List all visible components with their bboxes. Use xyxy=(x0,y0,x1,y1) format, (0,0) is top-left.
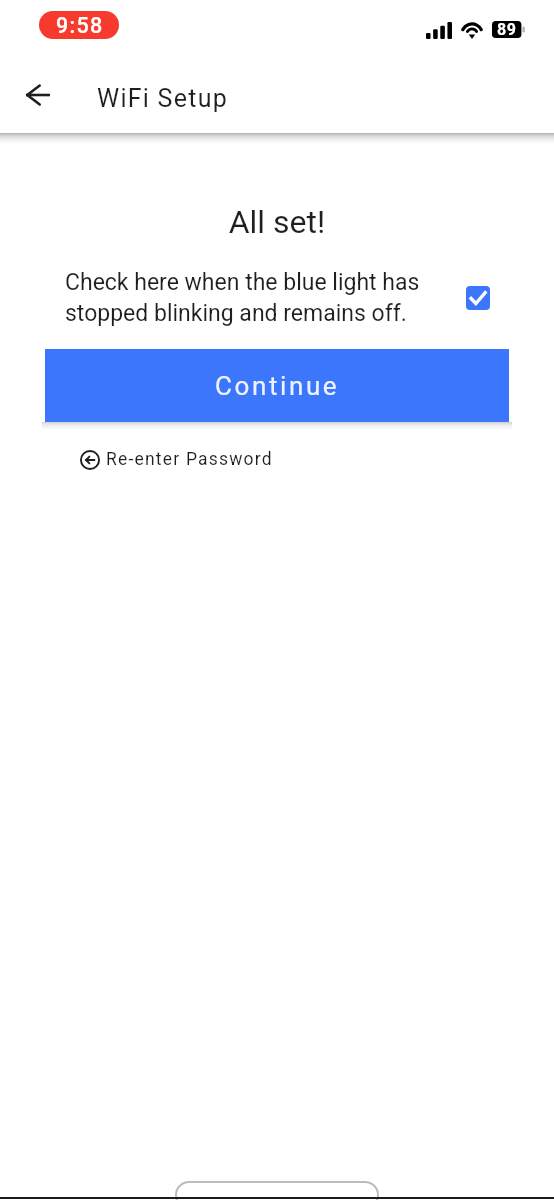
staticText: Continue xyxy=(215,371,340,401)
staticText: Check here when the blue light has stopp… xyxy=(65,269,444,326)
button[interactable]: Continue xyxy=(45,349,509,422)
staticText: 9:58 xyxy=(56,13,104,38)
button[interactable]: Back xyxy=(14,71,62,119)
button[interactable]: Re-enter Password xyxy=(80,449,273,470)
staticText: All set! xyxy=(0,203,554,241)
button[interactable]: Confirm light stopped blinking xyxy=(466,286,490,310)
staticText: Re-enter Password xyxy=(106,449,273,470)
staticText: WiFi Setup xyxy=(97,84,228,113)
staticText: 89 xyxy=(497,20,517,39)
